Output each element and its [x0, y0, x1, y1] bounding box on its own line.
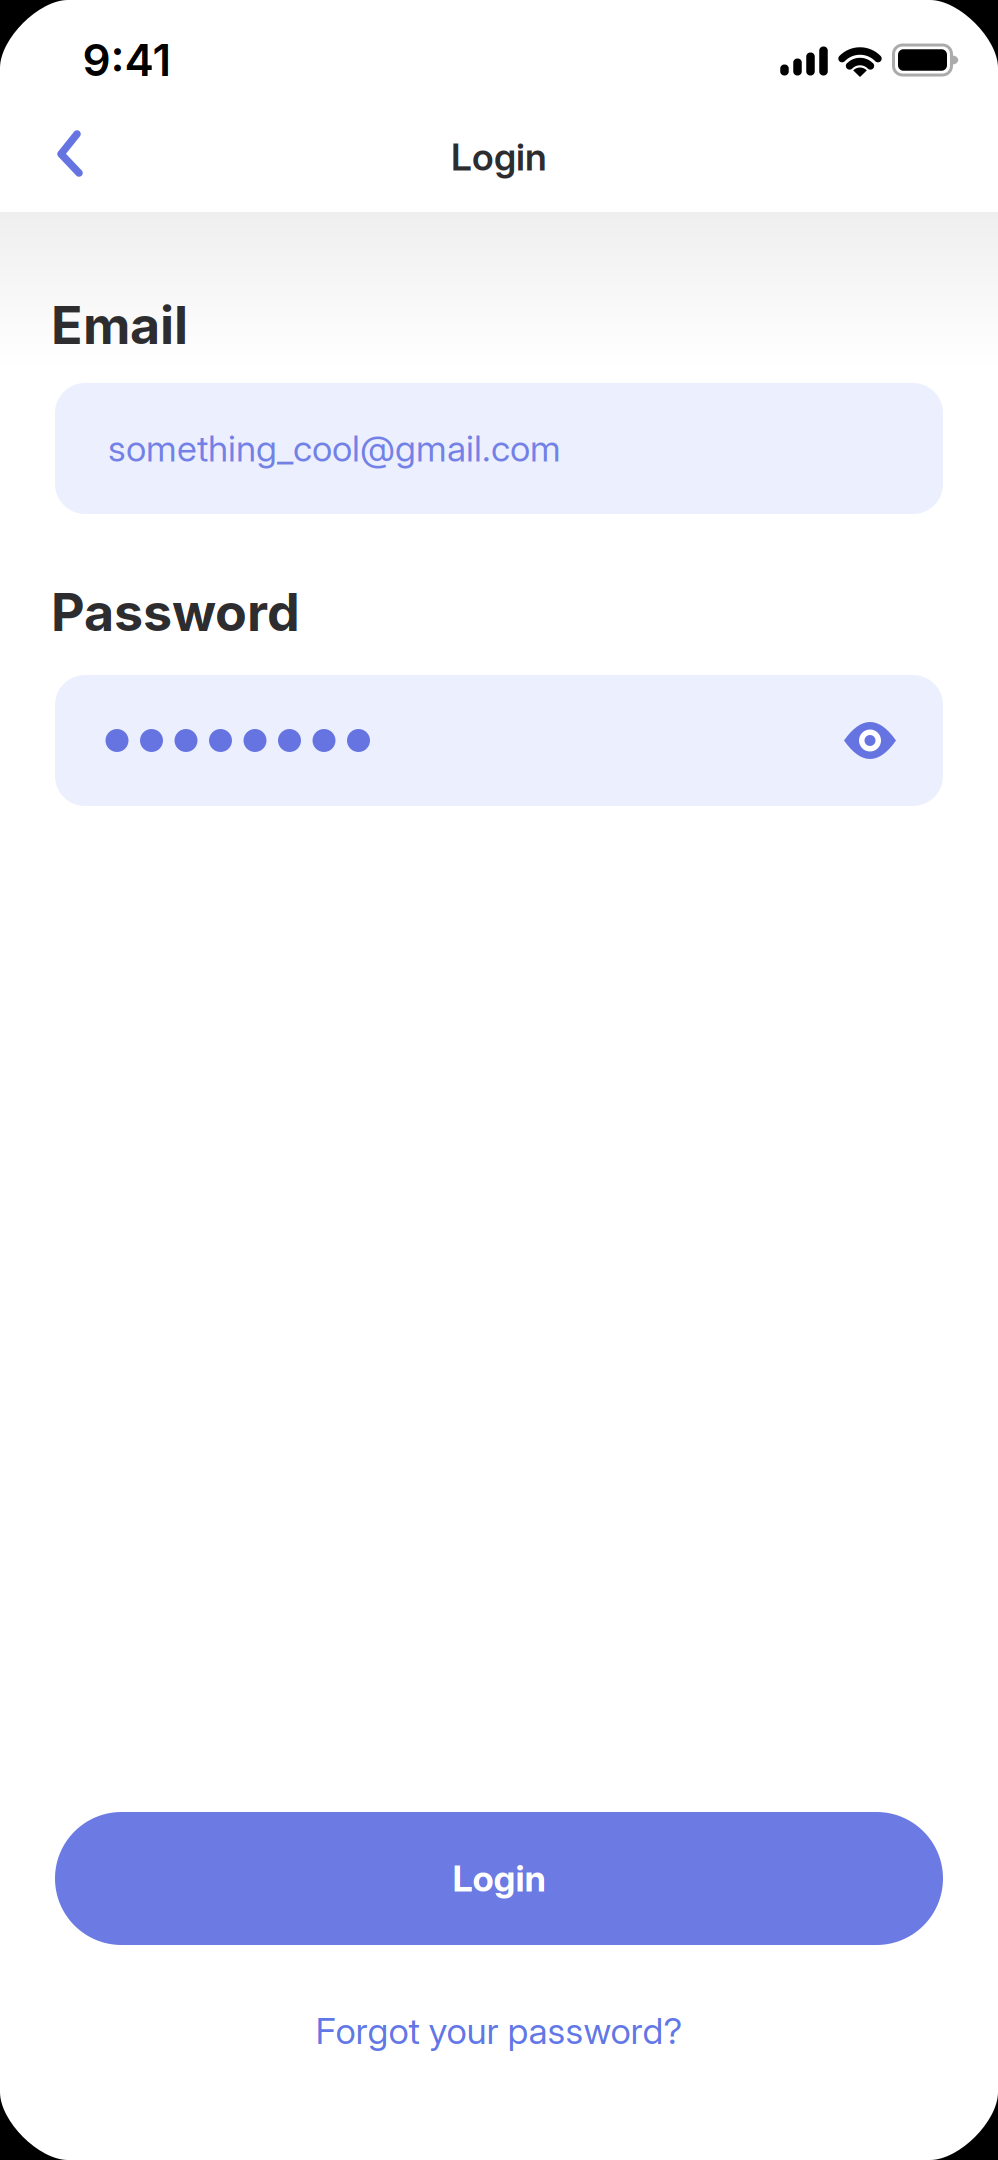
button[interactable]: Email	[55, 383, 943, 514]
button[interactable]: Back	[30, 115, 110, 195]
staticText: Email	[51, 294, 188, 356]
button[interactable]: Password	[55, 675, 943, 806]
button[interactable]: Login	[55, 1812, 943, 1945]
button[interactable]: Show password	[844, 714, 896, 766]
staticText: Password	[51, 581, 300, 643]
button[interactable]: Forgot your password?	[315, 2010, 682, 2052]
staticText: Forgot your password?	[315, 2010, 682, 2052]
staticText: Login	[452, 1857, 545, 1900]
staticText: Login	[451, 135, 547, 179]
staticText: 9:41	[82, 34, 171, 86]
staticText: something_cool@gmail.com	[108, 427, 561, 470]
